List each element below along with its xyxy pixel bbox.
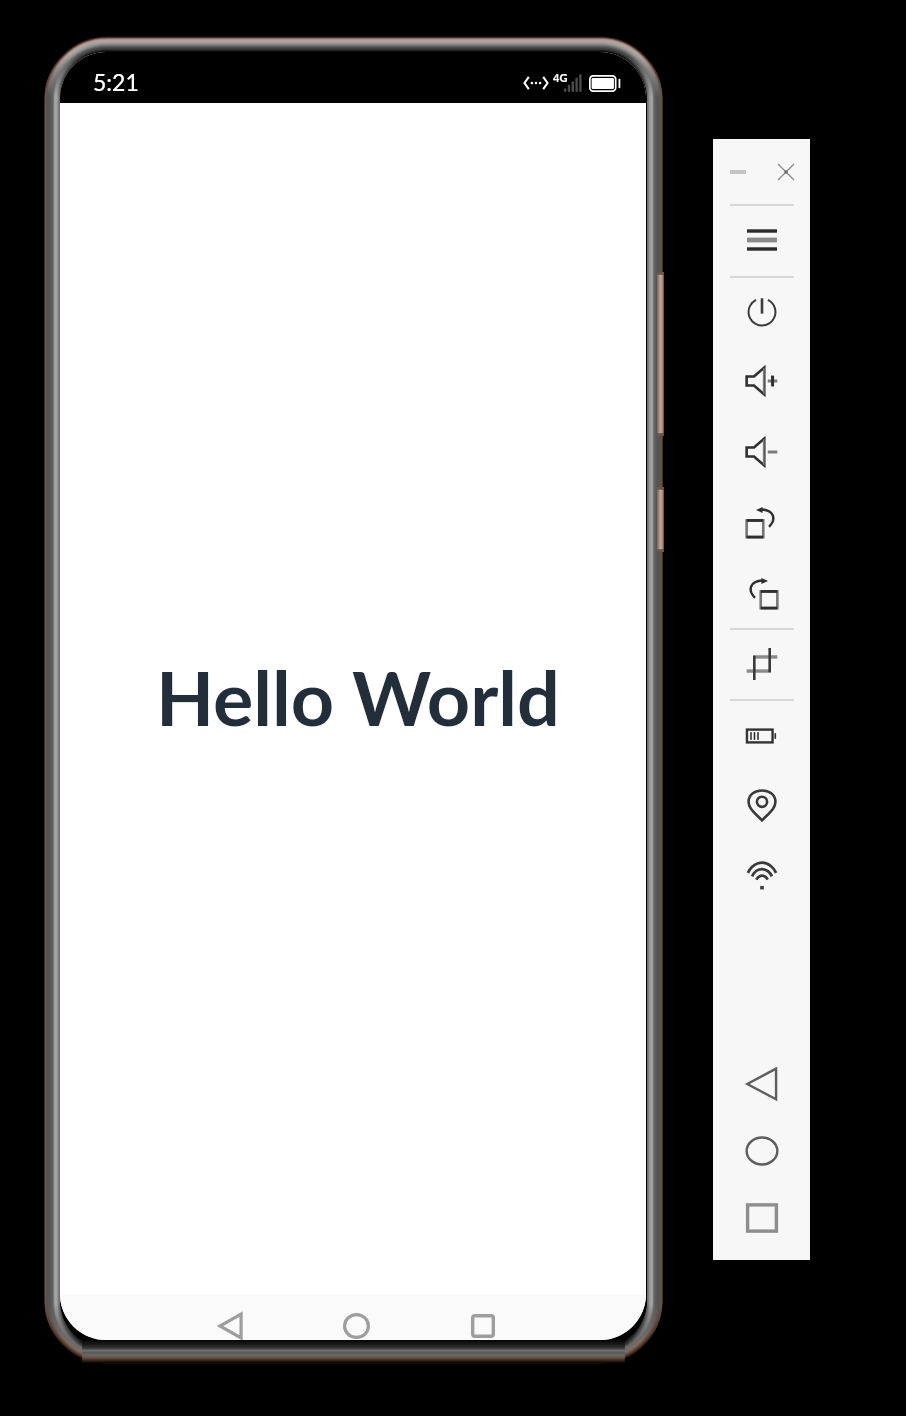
button[interactable]: Location: [737, 780, 787, 830]
button[interactable]: Overview: [737, 1193, 787, 1243]
button[interactable]: Back: [737, 1059, 787, 1109]
button[interactable]: Rotate right: [737, 498, 787, 548]
button[interactable]: Home: [737, 1126, 787, 1176]
staticText: 4G: [553, 71, 568, 84]
button[interactable]: Rotate left: [737, 569, 787, 619]
button[interactable]: Menu: [737, 215, 787, 265]
button[interactable]: Screenshot: [737, 639, 787, 689]
button[interactable]: Battery: [737, 711, 787, 761]
staticText: 5:21: [93, 68, 139, 96]
button[interactable]: Close: [770, 156, 802, 188]
button[interactable]: Volume down: [737, 427, 787, 477]
button[interactable]: Back: [180, 1294, 280, 1340]
staticText: Hello World: [156, 651, 560, 742]
button[interactable]: Power: [737, 287, 787, 337]
button[interactable]: Minimize: [720, 159, 756, 185]
button[interactable]: Recents: [433, 1294, 533, 1340]
button[interactable]: Volume up: [737, 356, 787, 406]
button[interactable]: Home: [306, 1294, 406, 1340]
button[interactable]: Wi-Fi: [737, 851, 787, 901]
